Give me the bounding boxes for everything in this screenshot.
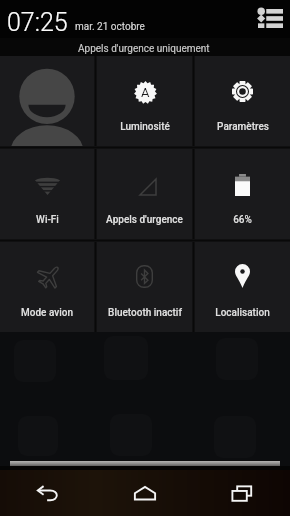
- button[interactable]: Mode avion: [0, 242, 94, 332]
- staticText: Paramètres: [217, 121, 269, 133]
- staticText: Appels d'urgence: [106, 214, 183, 226]
- button[interactable]: Appels d'urgence: [97, 149, 192, 239]
- staticText: Localisation: [215, 307, 270, 319]
- button[interactable]: Applications récentes: [210, 470, 274, 516]
- staticText: 07:25: [7, 8, 68, 37]
- button[interactable]: Retour: [16, 470, 80, 516]
- staticText: mar. 21 octobre: [75, 21, 145, 33]
- button[interactable]: Notifications: [255, 5, 285, 32]
- button[interactable]: Utilisateur: [0, 56, 94, 146]
- button[interactable]: Localisation: [195, 242, 290, 332]
- staticText: Luminosité: [120, 121, 170, 133]
- staticText: Mode avion: [21, 307, 73, 319]
- staticText: 66%: [233, 214, 252, 226]
- button[interactable]: Luminosité: [97, 56, 192, 146]
- button[interactable]: Paramètres: [195, 56, 290, 146]
- button[interactable]: Bluetooth inactif: [97, 242, 192, 332]
- button[interactable]: Accueil: [113, 470, 177, 516]
- button[interactable]: Wi-Fi: [0, 149, 94, 239]
- staticText: Appels d'urgence uniquement: [78, 43, 210, 55]
- staticText: Bluetooth inactif: [108, 307, 182, 319]
- staticText: Wi-Fi: [36, 214, 59, 226]
- button[interactable]: 66%: [195, 149, 290, 239]
- staticText: A: [141, 85, 150, 100]
